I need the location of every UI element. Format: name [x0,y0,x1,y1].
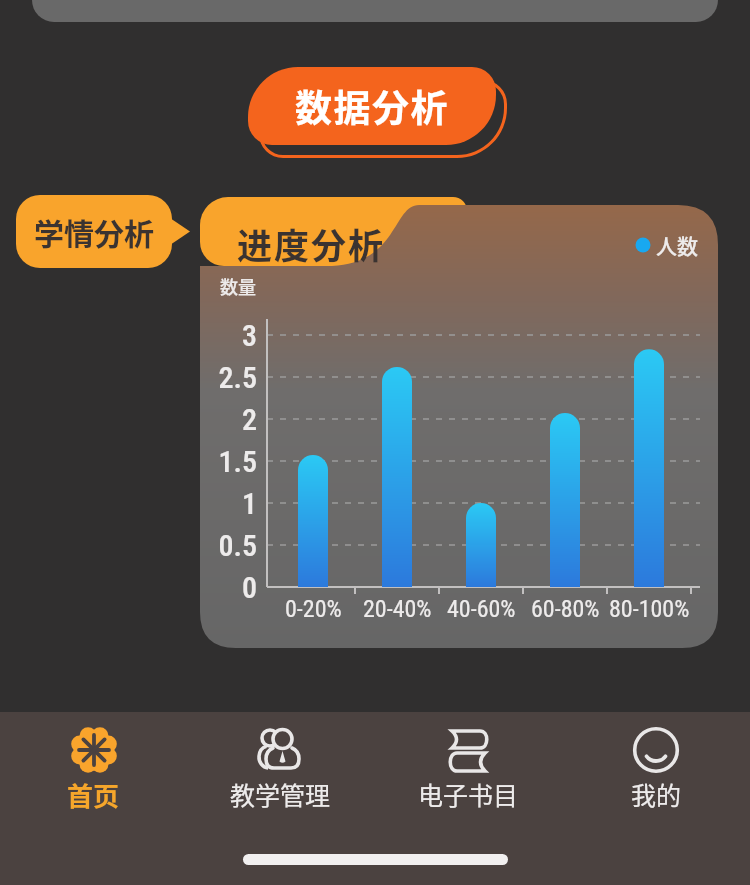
staticText: 60-80% [531,595,600,623]
button[interactable]: 我的 [562,724,750,812]
staticText: 0.5 [200,528,257,563]
staticText: 2.5 [200,360,257,395]
staticText: 我的 [631,776,682,812]
staticText: 1.5 [200,444,257,479]
button[interactable]: 教学管理 [187,724,374,812]
button[interactable]: 数据分析 [248,67,496,145]
staticText: 0 [200,570,257,605]
button[interactable]: 学情分析 [16,195,172,268]
staticText: 数量 [220,273,256,299]
staticText: 电子书目 [418,776,519,812]
staticText: 40-60% [447,595,516,623]
staticText: 首页 [67,776,120,814]
staticText: 80-100% [609,595,690,623]
staticText: 1 [200,486,257,521]
staticText: 教学管理 [230,776,331,812]
staticText: 人数 [656,230,698,260]
staticText: 学情分析 [34,210,154,253]
staticText: 进度分析 [237,218,386,269]
button[interactable]: 首页 [0,724,187,814]
staticText: 0-20% [285,595,342,623]
button[interactable]: 电子书目 [374,724,562,812]
staticText: 20-40% [363,595,432,623]
staticText: 3 [200,318,257,353]
staticText: 2 [200,402,257,437]
staticText: 数据分析 [295,79,449,133]
